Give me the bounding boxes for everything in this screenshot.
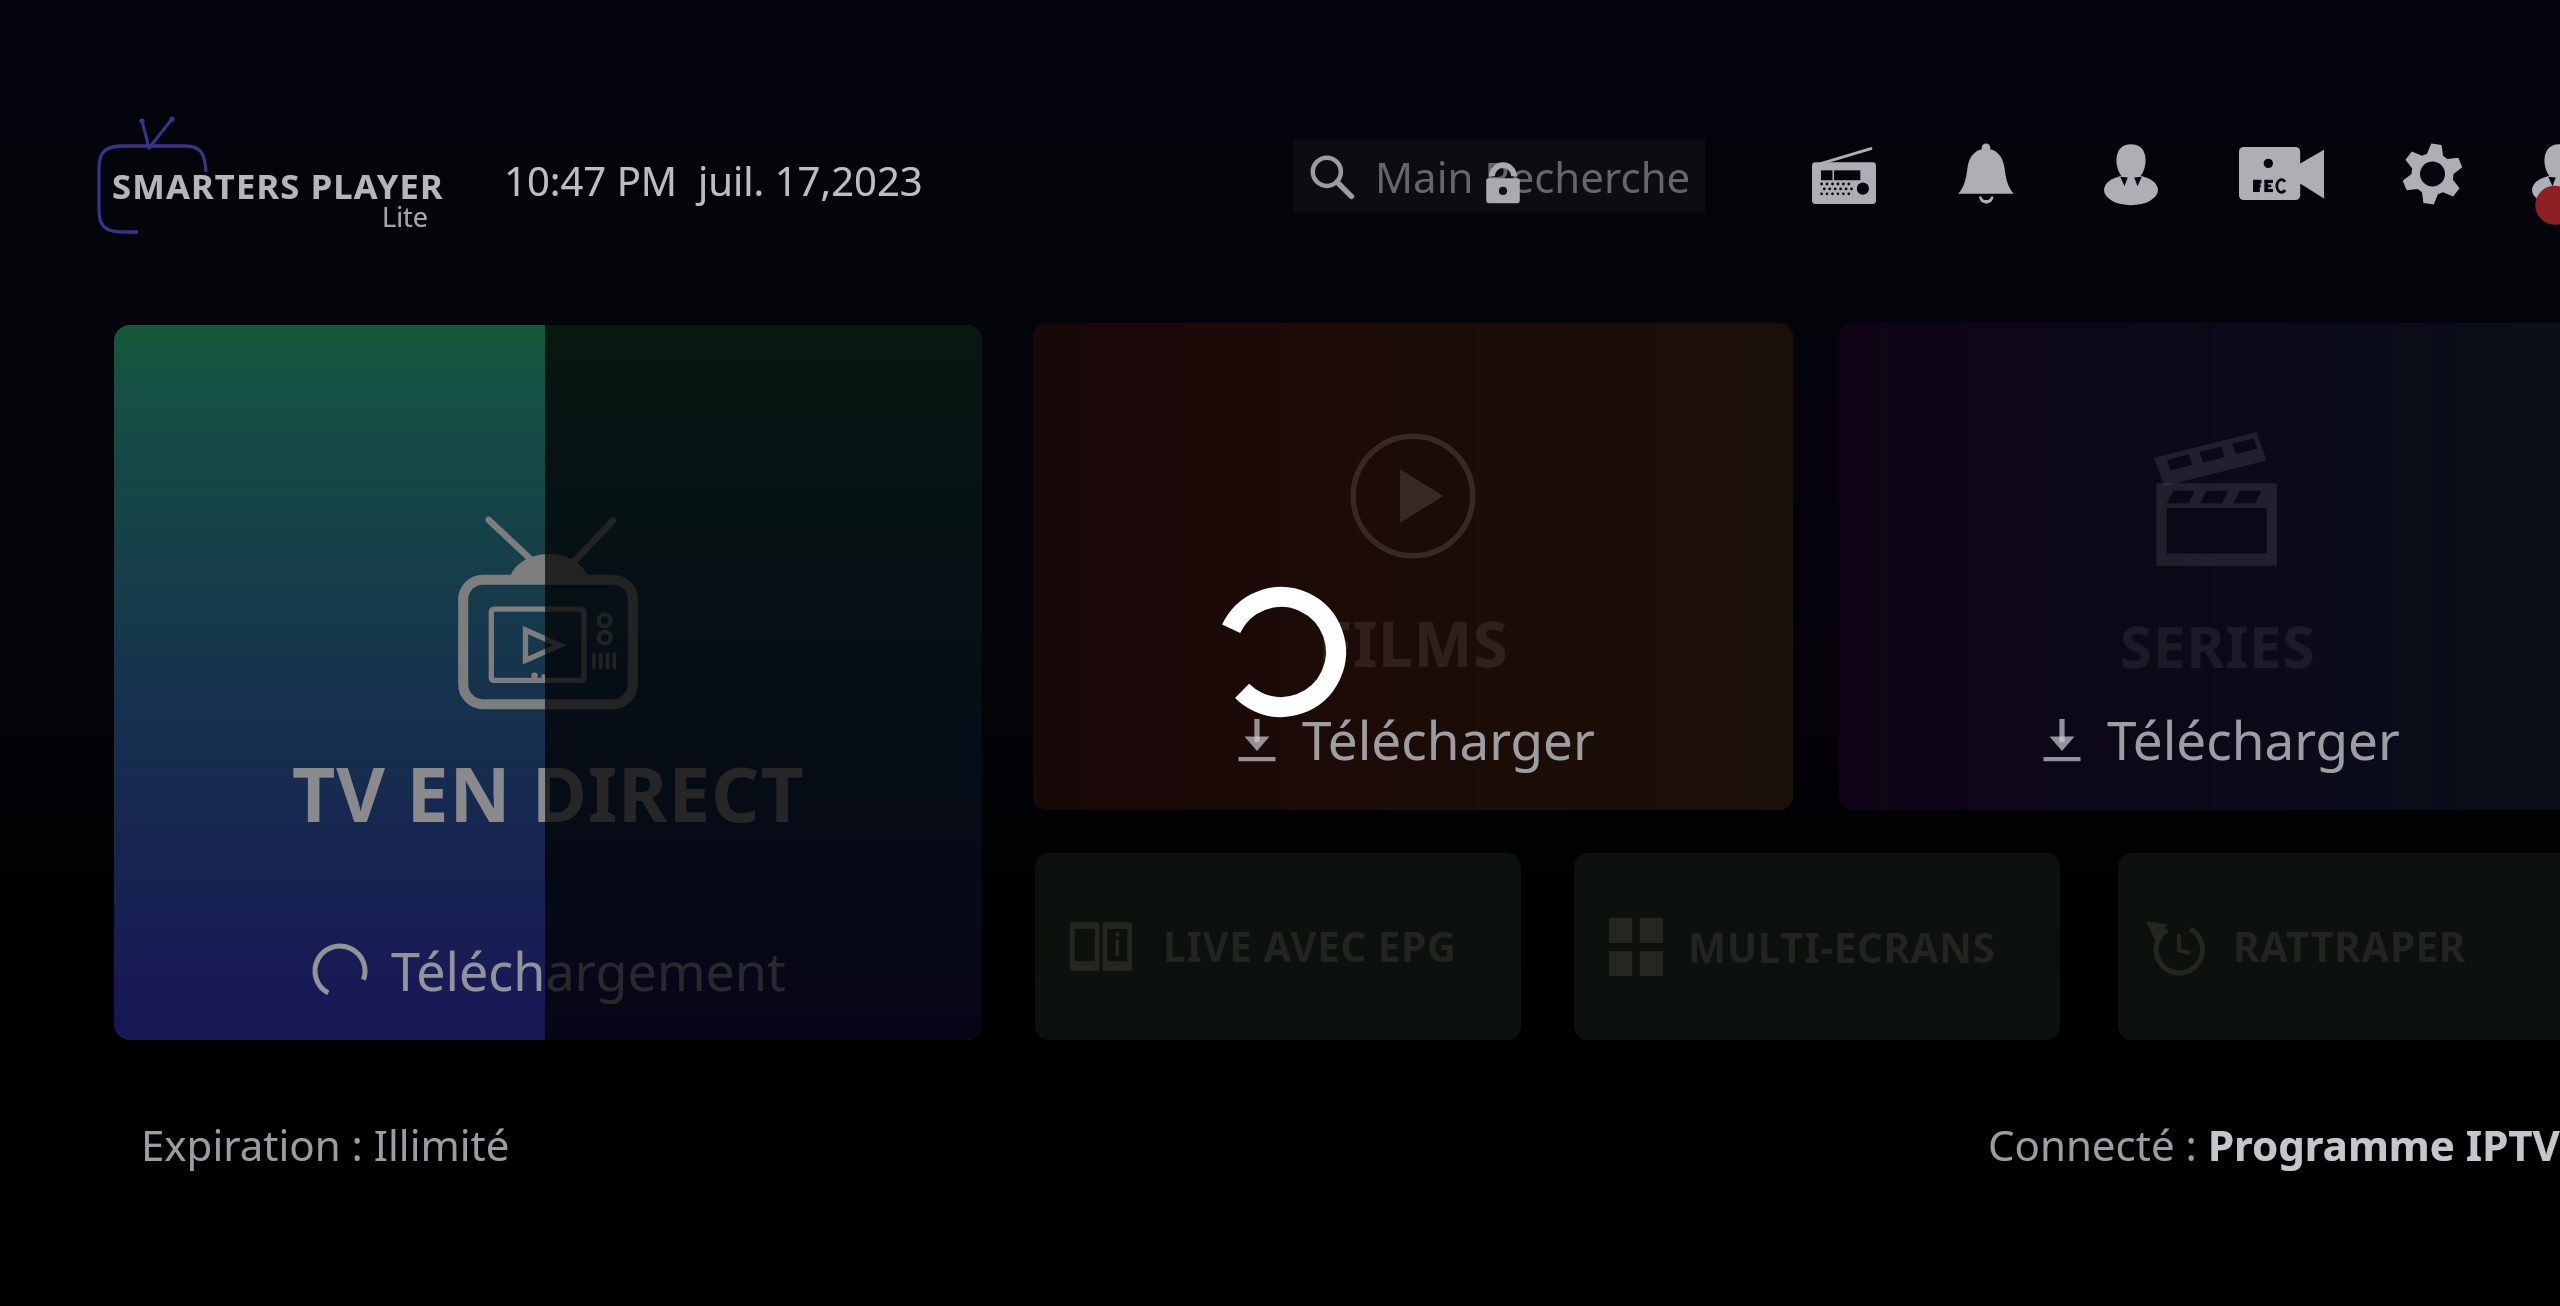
button[interactable]: Record xyxy=(2239,147,2324,200)
staticText: Télécharger xyxy=(2107,703,2400,775)
button[interactable]: Settings xyxy=(2402,143,2463,205)
staticText: Main Recherche xyxy=(1375,148,1691,205)
button[interactable]: TV EN DIRECT xyxy=(114,325,982,1040)
staticText: Télécharger xyxy=(1302,703,1595,775)
staticText: SERIES xyxy=(2120,606,2316,685)
staticText: RATTRAPER xyxy=(2233,919,2466,974)
staticText: Lite xyxy=(382,198,429,235)
staticText: LIVE AVEC EPG xyxy=(1163,919,1457,974)
staticText: TV EN DIRECT xyxy=(292,742,805,844)
button[interactable]: Profile xyxy=(2104,143,2158,204)
button[interactable]: LIVE AVEC EPG xyxy=(1035,853,1521,1040)
button[interactable]: RATTRAPER xyxy=(2118,853,2560,1040)
button[interactable]: Account xyxy=(2532,143,2560,204)
staticText: MULTI-ECRANS xyxy=(1688,920,1996,975)
button[interactable]: Notifications xyxy=(1957,144,2015,204)
button[interactable]: MULTI-ECRANS xyxy=(1574,853,2060,1040)
button[interactable]: SERIES xyxy=(1839,323,2560,810)
button[interactable]: FILMS xyxy=(1033,323,1793,810)
staticText: Connecté : xyxy=(1988,1116,2208,1173)
staticText: 10:47 PM juil. 17,2023 xyxy=(504,153,923,207)
staticText: Expiration : Illimité xyxy=(141,1116,510,1173)
staticText: Programme IPTV xyxy=(2208,1116,2560,1173)
staticText: SMARTERS PLAYER xyxy=(112,162,444,209)
staticText: Téléchargement xyxy=(391,935,786,1006)
button[interactable]: Radio xyxy=(1812,146,1876,204)
button[interactable]: Main Recherche xyxy=(1293,139,1705,213)
staticText: FILMS xyxy=(1318,601,1509,685)
